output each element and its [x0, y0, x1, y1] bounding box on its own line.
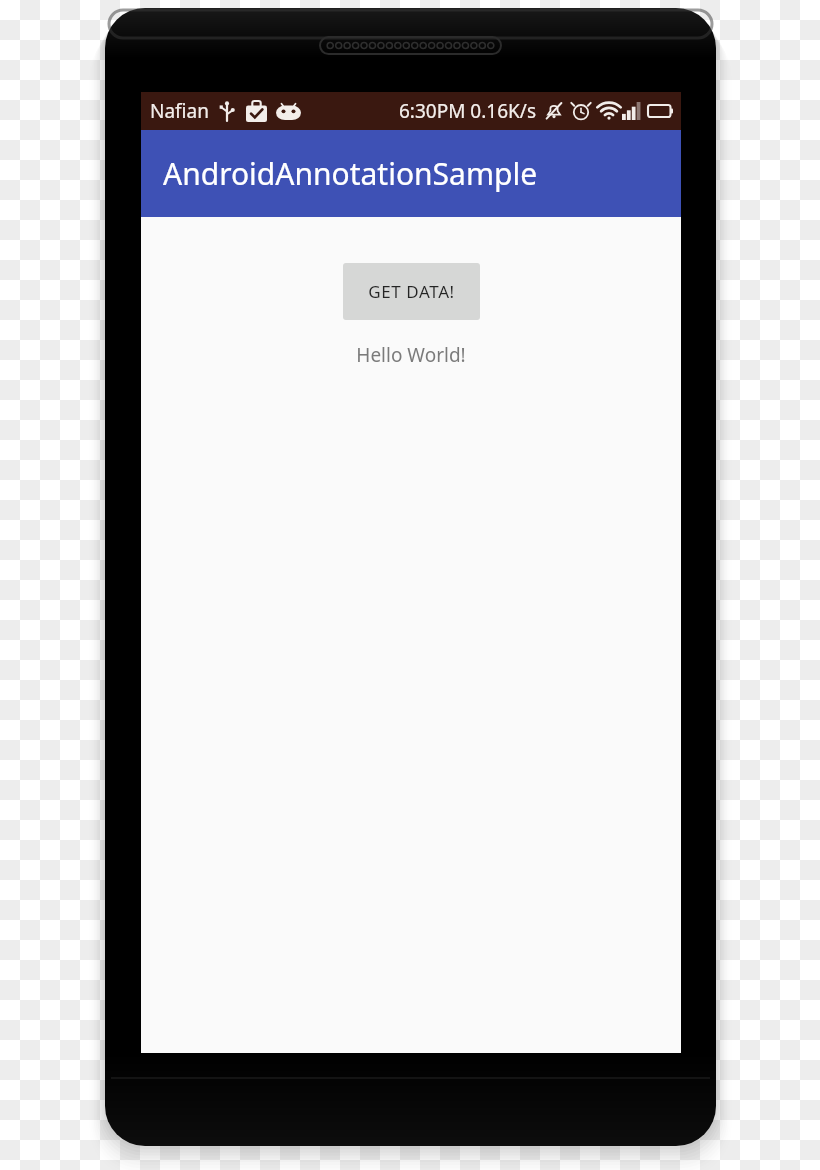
other: Android — [276, 102, 301, 120]
other: USB connected — [219, 101, 235, 121]
other: Alarm set — [571, 101, 591, 121]
staticText: AndroidAnnotationSample — [163, 153, 538, 194]
other: Wi-Fi — [598, 102, 620, 120]
other: Battery — [648, 103, 673, 119]
other: Signal strength — [622, 102, 642, 120]
staticText: Hello World! — [356, 342, 466, 368]
other: Work profile — [246, 101, 267, 122]
other: Silent mode — [544, 101, 564, 121]
staticText: 6:30PM 0.16K/s — [399, 98, 536, 124]
staticText: GET DATA! — [368, 280, 455, 303]
button[interactable]: GET DATA! — [343, 263, 480, 320]
staticText: Nafian — [150, 98, 209, 124]
